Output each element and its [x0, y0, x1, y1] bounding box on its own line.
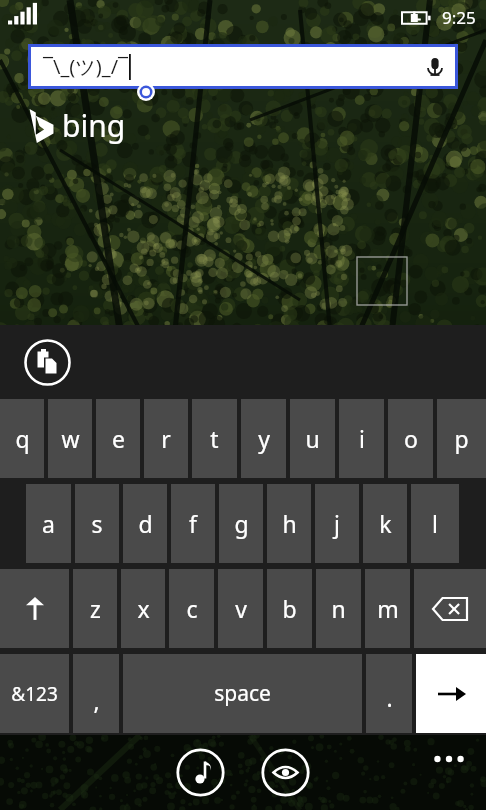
button[interactable]: d [123, 484, 167, 563]
button[interactable]: Vision search [261, 748, 310, 797]
button[interactable]: u [290, 399, 335, 478]
staticText: j [334, 508, 340, 539]
staticText: e [112, 423, 125, 454]
staticText: space [214, 679, 271, 708]
staticText: ¯\_(ツ)_/¯ [43, 53, 129, 80]
button[interactable]: n [316, 569, 361, 648]
staticText: , [93, 685, 100, 716]
button[interactable]: Music search [176, 748, 225, 797]
button[interactable]: space [123, 654, 362, 733]
button[interactable]: p [437, 399, 486, 478]
button[interactable]: e [96, 399, 140, 478]
button[interactable]: Clipboard [24, 339, 71, 386]
button[interactable]: c [169, 569, 214, 648]
staticText: . [386, 682, 393, 713]
staticText: z [90, 593, 101, 624]
staticText: x [137, 593, 150, 624]
button[interactable]: &123 [0, 654, 69, 733]
button[interactable]: ¯\_(ツ)_/¯ [31, 47, 455, 86]
button[interactable]: l [411, 484, 459, 563]
staticText: p [454, 423, 469, 454]
button[interactable]: z [73, 569, 117, 648]
staticText: v [235, 593, 247, 624]
staticText: b [282, 593, 297, 624]
staticText: t [210, 423, 219, 454]
button[interactable]: q [0, 399, 44, 478]
button[interactable]: s [75, 484, 119, 563]
button[interactable]: h [267, 484, 311, 563]
button[interactable]: f [171, 484, 215, 563]
staticText: a [42, 508, 55, 539]
button[interactable]: b [267, 569, 312, 648]
staticText: &123 [11, 681, 58, 707]
staticText: y [258, 423, 270, 454]
button[interactable]: bing [28, 105, 126, 146]
button[interactable]: o [388, 399, 433, 478]
button[interactable]: k [363, 484, 407, 563]
staticText: o [404, 423, 418, 454]
button[interactable]: a [26, 484, 71, 563]
button[interactable]: y [241, 399, 286, 478]
button[interactable]: m [365, 569, 410, 648]
button[interactable]: w [48, 399, 92, 478]
button[interactable]: r [144, 399, 188, 478]
staticText: g [234, 508, 249, 539]
button[interactable]: g [219, 484, 263, 563]
staticText: d [138, 508, 153, 539]
staticText: s [91, 508, 103, 539]
staticText: 9:25 [442, 6, 476, 29]
button[interactable]: Backspace [414, 569, 486, 648]
staticText: f [189, 508, 197, 539]
staticText: w [61, 423, 80, 454]
staticText: q [15, 423, 30, 454]
staticText: c [186, 593, 198, 624]
staticText: k [379, 508, 392, 539]
button[interactable]: i [339, 399, 384, 478]
button[interactable]: Enter [416, 654, 486, 733]
staticText: m [377, 593, 399, 624]
button[interactable]: v [218, 569, 263, 648]
staticText: i [359, 423, 365, 454]
button[interactable]: . [366, 654, 412, 733]
staticText: r [161, 423, 171, 454]
staticText: u [305, 423, 320, 454]
button[interactable]: j [315, 484, 359, 563]
button[interactable]: t [192, 399, 237, 478]
button[interactable]: More options [426, 745, 472, 773]
staticText: bing [62, 105, 126, 146]
button[interactable]: , [73, 654, 119, 733]
staticText: n [331, 593, 346, 624]
button[interactable]: Voice search [415, 47, 455, 86]
button[interactable]: Shift [0, 569, 69, 648]
button[interactable]: x [121, 569, 165, 648]
staticText: h [282, 508, 297, 539]
staticText: l [432, 508, 438, 539]
